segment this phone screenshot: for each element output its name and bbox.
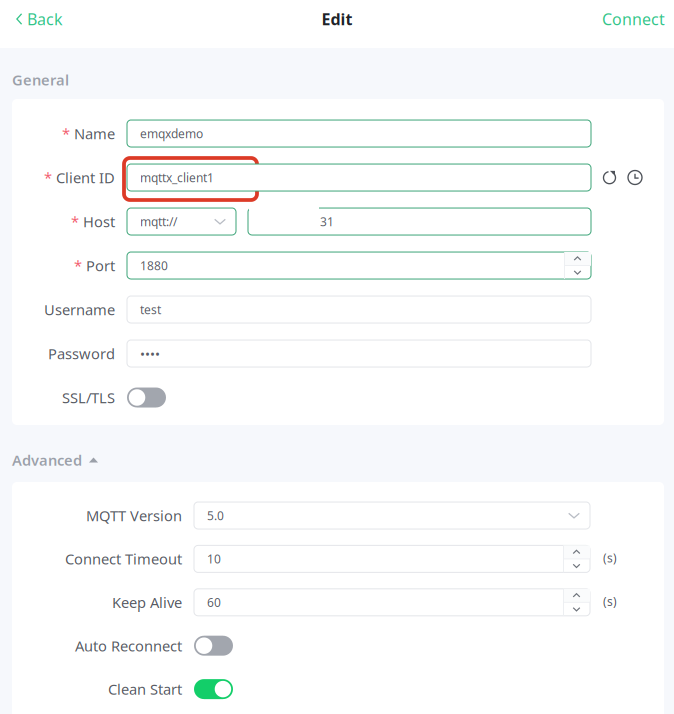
staticText: Username	[44, 300, 115, 319]
staticText: Auto Reconnect	[75, 636, 182, 655]
button[interactable]: SSL/TLS	[127, 387, 166, 407]
button[interactable]: Regenerate client ID	[602, 169, 618, 185]
staticText: *	[62, 124, 70, 143]
staticText: *	[71, 212, 79, 231]
button[interactable]: 1880	[127, 252, 591, 279]
staticText: 60	[207, 594, 221, 610]
button[interactable]: Advanced	[12, 452, 98, 468]
staticText: test	[140, 301, 161, 317]
staticText: Back	[27, 8, 63, 30]
button[interactable]: Auto Reconnect	[194, 636, 233, 656]
staticText: 10	[207, 551, 221, 567]
staticText: mqttx_client1	[140, 169, 214, 185]
staticText: General	[12, 70, 69, 89]
button[interactable]: emqxdemo	[127, 120, 591, 147]
staticText: ••••	[140, 345, 160, 362]
button[interactable]: Client ID history	[627, 169, 643, 185]
button[interactable]: Connect	[586, 0, 674, 38]
staticText: (s)	[603, 593, 617, 609]
button[interactable]: 31	[248, 208, 591, 235]
staticText: Port	[86, 256, 115, 275]
staticText: Clean Start	[108, 679, 182, 699]
staticText: MQTT Version	[86, 506, 182, 525]
staticText: Connect	[602, 8, 665, 30]
button[interactable]: Back	[0, 0, 79, 38]
staticText: emqxdemo	[140, 125, 203, 141]
button[interactable]: mqttx_client1	[127, 164, 591, 191]
staticText: mqtt://	[140, 213, 177, 229]
staticText: Keep Alive	[112, 593, 182, 612]
button[interactable]: test	[127, 296, 591, 323]
staticText: Name	[74, 124, 115, 143]
staticText: 1880	[140, 257, 168, 273]
staticText: SSL/TLS	[62, 388, 115, 407]
staticText: Password	[48, 344, 115, 363]
staticText: Connect Timeout	[65, 549, 182, 569]
button[interactable]: 5.0	[194, 502, 590, 529]
button[interactable]: 60	[194, 589, 590, 616]
button[interactable]: mqtt://	[127, 208, 236, 235]
staticText: *	[74, 256, 82, 275]
staticText: Client ID	[56, 168, 115, 187]
staticText: (s)	[603, 550, 617, 566]
button[interactable]: ••••	[127, 340, 591, 367]
button[interactable]: Clean Start	[194, 679, 233, 699]
staticText: Host	[83, 212, 115, 231]
staticText: Advanced	[12, 450, 82, 470]
button[interactable]: 10	[194, 545, 590, 572]
staticText: Edit	[321, 8, 352, 30]
staticText: 5.0	[207, 507, 224, 523]
staticText: 31	[320, 213, 334, 229]
staticText: *	[44, 168, 52, 187]
